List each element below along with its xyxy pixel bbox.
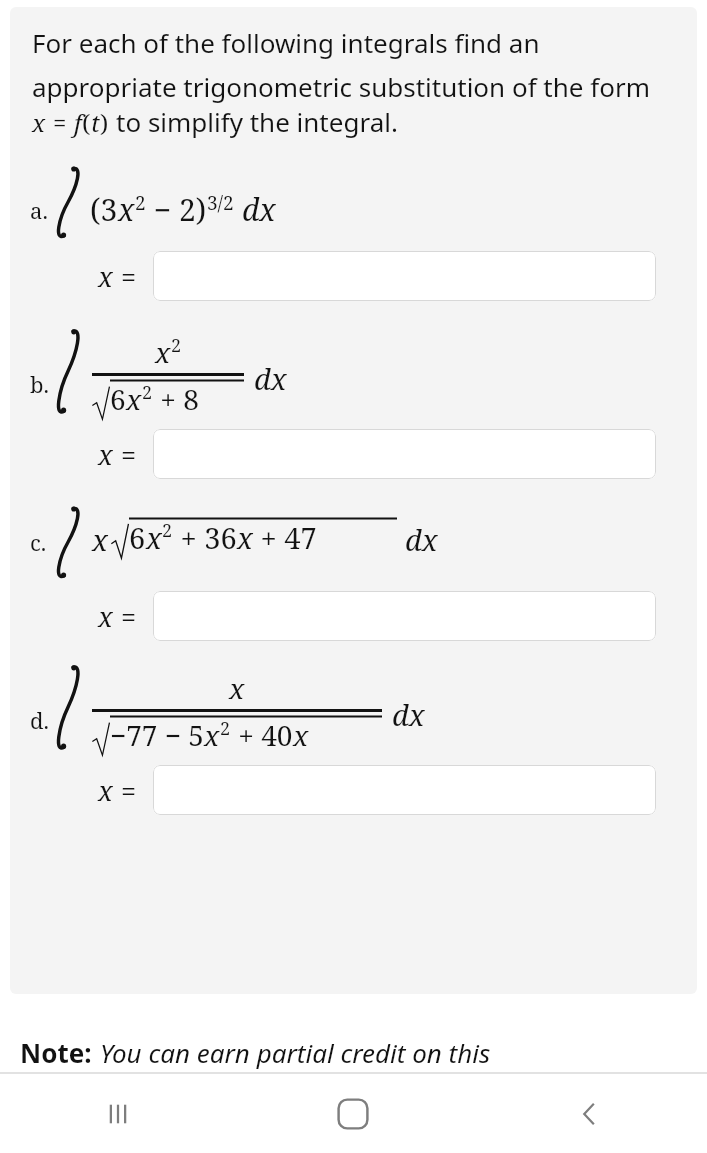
staticText: Note: (20, 1035, 92, 1070)
staticText: 6 (129, 518, 146, 557)
button[interactable]: Recents (0, 1074, 235, 1153)
staticText: x (98, 598, 113, 635)
staticText: −77 − 5 (110, 716, 204, 754)
staticText: x (126, 380, 142, 418)
staticText: t (91, 106, 100, 139)
staticText: 2 (142, 380, 153, 405)
staticText: x (237, 518, 253, 557)
staticText: = (53, 106, 67, 139)
staticText: 2 (162, 518, 173, 543)
staticText: dx (405, 520, 438, 559)
staticText: a. (30, 195, 48, 225)
staticText: x (92, 520, 108, 559)
staticText: x (204, 716, 220, 754)
staticText: 2 (171, 333, 182, 358)
staticText: ( (82, 106, 91, 139)
staticText: 3/2 (207, 190, 234, 216)
staticText: + 40 (231, 716, 293, 754)
staticText: = (121, 436, 137, 473)
staticText: x (98, 258, 113, 295)
button[interactable]: Back (471, 1074, 707, 1153)
staticText: − 2) (146, 189, 207, 230)
staticText: to simplify the integral. (116, 104, 398, 139)
staticText: x (118, 189, 135, 230)
staticText: x (155, 333, 171, 371)
staticText: f (74, 106, 82, 139)
button[interactable] (153, 591, 656, 641)
staticText: dx (254, 359, 287, 398)
staticText: + 36 (173, 518, 237, 557)
staticText: x (32, 106, 46, 139)
staticText: = (121, 258, 137, 295)
staticText: 2 (135, 190, 146, 216)
staticText: x (229, 669, 245, 707)
staticText: b. (30, 369, 50, 399)
staticText: x (146, 518, 162, 557)
staticText: You can earn partial credit on this (100, 1035, 491, 1070)
staticText: x (98, 436, 113, 473)
staticText: c. (30, 527, 47, 557)
button[interactable]: Home (235, 1074, 471, 1153)
staticText: ) (100, 106, 109, 139)
staticText: + 8 (153, 380, 199, 418)
button[interactable] (153, 251, 656, 301)
staticText: (3 (90, 189, 118, 230)
staticText: dx (242, 189, 276, 230)
button[interactable] (153, 765, 656, 815)
staticText: = (121, 598, 137, 635)
staticText: For each of the following integrals find… (32, 25, 683, 104)
staticText: d. (30, 705, 50, 735)
staticText: 6 (110, 380, 126, 418)
staticText: + 47 (253, 518, 317, 557)
staticText: 2 (220, 716, 231, 741)
staticText: x (98, 772, 113, 809)
staticText: dx (392, 695, 425, 734)
staticText: x (293, 716, 309, 754)
staticText: = (121, 772, 137, 809)
button[interactable] (153, 429, 656, 479)
